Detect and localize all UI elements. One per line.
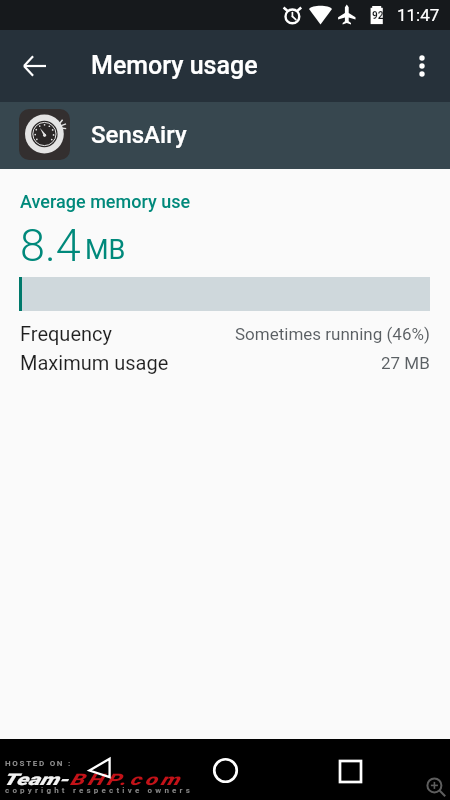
staticText: 11:47: [397, 5, 440, 25]
staticText: Sometimes running (46%): [235, 324, 430, 344]
staticText: 8.4: [20, 219, 81, 272]
staticText: 27 MB: [381, 353, 430, 373]
staticText: Memory usage: [91, 51, 258, 80]
staticText: 92: [372, 10, 384, 22]
staticText: Team-: [3, 770, 70, 789]
staticText: HOSTED ON :: [5, 759, 72, 768]
staticText: SensAiry: [91, 121, 187, 149]
button[interactable]: Back: [76, 746, 124, 794]
button[interactable]: Home: [201, 746, 249, 794]
staticText: Average memory use: [20, 191, 191, 212]
staticText: Maximum usage: [20, 351, 169, 374]
button[interactable]: Navigate up: [11, 42, 59, 90]
button[interactable]: Frequency: [0, 319, 450, 348]
button[interactable]: Recent apps: [326, 747, 374, 795]
button[interactable]: SensAiry: [0, 102, 450, 169]
button[interactable]: Maximum usage: [0, 348, 450, 377]
button[interactable]: Zoom in: [426, 777, 446, 797]
staticText: MB: [85, 234, 126, 266]
staticText: BHP.com: [70, 770, 183, 789]
staticText: Frequency: [20, 322, 112, 345]
button[interactable]: More options: [398, 42, 446, 90]
staticText: copyright respective owners: [5, 786, 194, 795]
